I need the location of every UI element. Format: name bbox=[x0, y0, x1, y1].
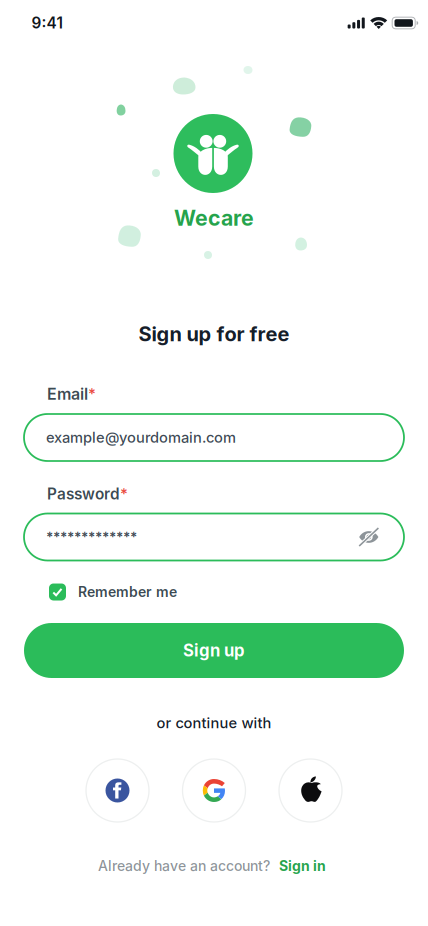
staticText: Wecare bbox=[174, 205, 254, 231]
staticText: * bbox=[88, 385, 96, 403]
staticText: example@yourdomain.com bbox=[46, 429, 236, 446]
button[interactable]: Already have an account? bbox=[98, 847, 326, 884]
button[interactable]: Continue with Apple bbox=[279, 759, 342, 822]
staticText: or continue with bbox=[156, 714, 271, 732]
button[interactable]: Remember me bbox=[49, 577, 177, 606]
button[interactable]: Sign up bbox=[24, 623, 404, 678]
staticText: Sign in bbox=[279, 857, 326, 874]
staticText: Password bbox=[47, 485, 120, 503]
staticText: Remember me bbox=[78, 583, 177, 600]
staticText: * bbox=[120, 485, 128, 503]
staticText: Email bbox=[47, 384, 88, 404]
staticText: Sign up for free bbox=[138, 322, 289, 346]
staticText: Already have an account? bbox=[98, 857, 270, 874]
staticText: 9:41 bbox=[31, 14, 62, 32]
staticText: Sign up bbox=[183, 640, 245, 661]
button[interactable]: Continue with Google bbox=[182, 759, 245, 822]
button[interactable]: Continue with Facebook bbox=[86, 759, 149, 822]
staticText: ************* bbox=[46, 529, 137, 545]
button[interactable]: Show password bbox=[359, 529, 379, 545]
